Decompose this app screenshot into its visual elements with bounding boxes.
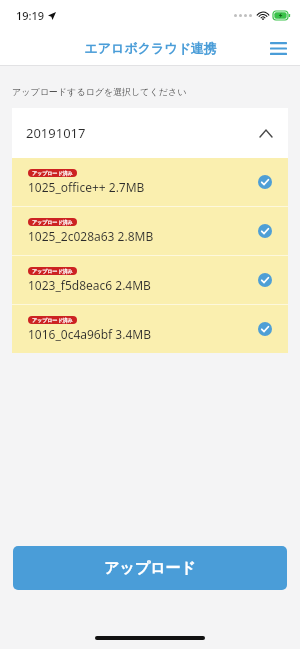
staticText: アップロードするログを選択してください [12,86,187,97]
staticText: 1016_0c4a96bf 3.4MB [28,326,151,342]
staticText: 1025_office++ 2.7MB [28,179,145,195]
button[interactable]: アップロード済み [12,158,288,206]
staticText: アップロード済み [32,317,73,323]
staticText: 1023_f5d8eac6 2.4MB [28,277,151,293]
button[interactable]: アップロード済み [12,256,288,304]
button[interactable]: アップロード済み [12,305,288,353]
button[interactable]: 20191017 [12,108,288,158]
staticText: 1025_2c028a63 2.8MB [28,228,154,244]
staticText: 20191017 [26,124,86,142]
button[interactable]: Menu [265,35,291,61]
staticText: 19:19 [16,8,45,23]
button[interactable]: アップロード済み [12,207,288,255]
staticText: エアロボクラウド連携 [84,40,217,56]
button[interactable]: アップロード [13,546,287,590]
staticText: アップロード済み [32,219,73,225]
staticText: アップロード済み [32,170,73,176]
staticText: アップロード [104,559,196,578]
staticText: アップロード済み [32,268,73,274]
